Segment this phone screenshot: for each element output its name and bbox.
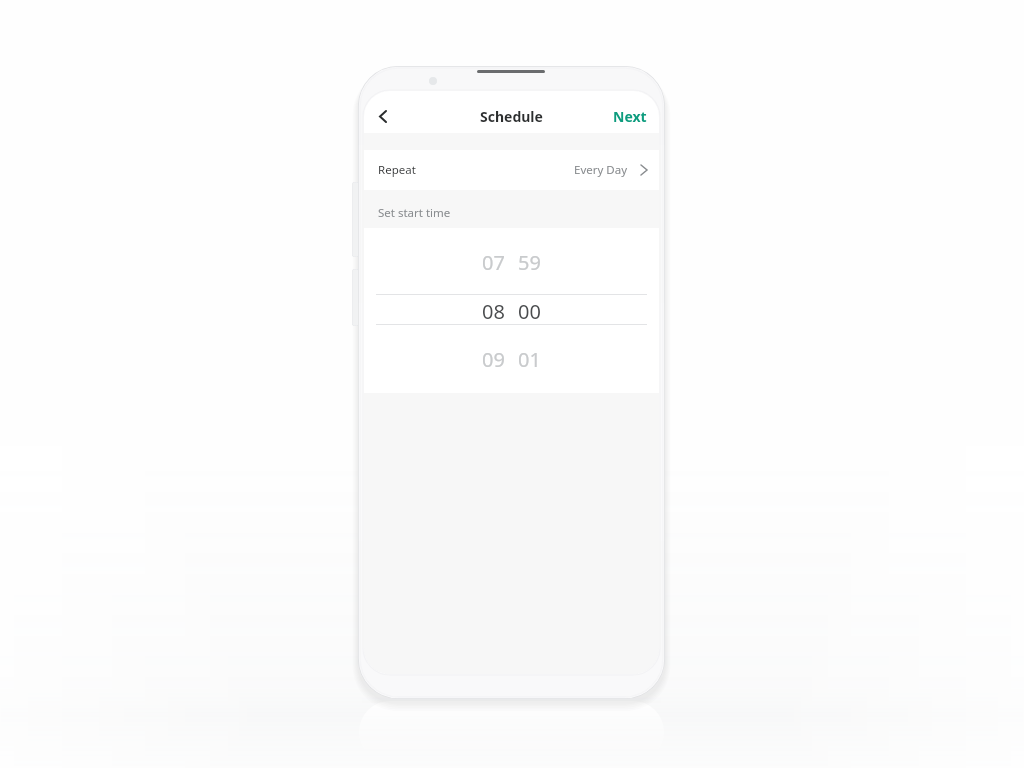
button[interactable]: Repeat: [364, 150, 659, 190]
staticText: 09: [482, 346, 505, 373]
staticText: 00: [518, 298, 541, 325]
staticText: 59: [518, 249, 541, 276]
staticText: Schedule: [480, 107, 543, 126]
staticText: 01: [518, 346, 541, 373]
staticText: Every Day: [574, 162, 628, 178]
staticText: Set start time: [378, 205, 451, 221]
button[interactable]: Back: [364, 100, 402, 133]
button[interactable]: 07: [364, 238, 659, 286]
staticText: 07: [482, 249, 505, 276]
button[interactable]: 08: [364, 287, 659, 335]
button[interactable]: Next: [601, 100, 659, 133]
staticText: Next: [613, 107, 647, 126]
staticText: 08: [482, 298, 505, 325]
button[interactable]: 09: [364, 335, 659, 383]
staticText: Repeat: [378, 162, 416, 178]
